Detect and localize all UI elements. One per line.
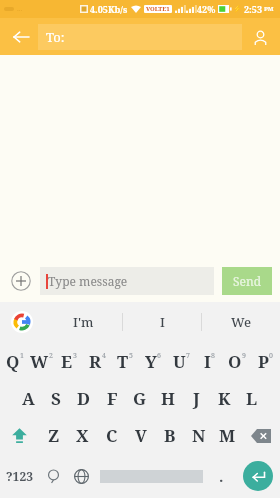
button[interactable]: E — [55, 342, 83, 380]
button[interactable]: W — [28, 342, 55, 380]
button[interactable]: Y — [139, 342, 167, 380]
staticText: P — [258, 350, 269, 373]
button[interactable]: L — [238, 380, 266, 417]
staticText: X — [76, 424, 89, 447]
staticText: V — [135, 424, 147, 447]
staticText: F — [107, 387, 118, 410]
button[interactable]: I — [123, 302, 201, 342]
staticText: 1 — [20, 351, 24, 361]
staticText: 5 — [129, 351, 133, 361]
staticText: W — [30, 350, 49, 373]
button[interactable]: X — [68, 417, 97, 454]
staticText: I — [160, 313, 165, 331]
staticText: M — [219, 424, 236, 447]
button[interactable]: B — [155, 417, 184, 454]
button[interactable]: C — [97, 417, 126, 454]
staticText: 2:53 — [244, 3, 262, 15]
button[interactable]: G — [126, 380, 154, 417]
staticText: 42% — [197, 3, 216, 15]
staticText: I — [204, 350, 211, 373]
button[interactable]: K — [210, 380, 238, 417]
button[interactable]: I'm — [44, 302, 122, 342]
button[interactable]: . — [207, 454, 235, 498]
button[interactable]: I — [195, 342, 223, 380]
button[interactable]: Shift — [0, 417, 39, 454]
staticText: ⚡ — [233, 5, 242, 13]
staticText: PM — [264, 5, 274, 13]
staticText: R — [89, 350, 102, 373]
staticText: U — [173, 350, 186, 373]
staticText: 4 — [102, 351, 106, 361]
staticText: To: — [46, 28, 65, 46]
staticText: O — [228, 350, 242, 373]
button[interactable]: ?123 — [0, 454, 39, 498]
button[interactable]: F — [98, 380, 126, 417]
staticText: L — [246, 387, 258, 410]
button[interactable]: M — [213, 417, 242, 454]
staticText: . — [219, 466, 224, 486]
staticText: C — [106, 424, 118, 447]
button[interactable]: Google — [0, 302, 44, 342]
button[interactable]: Space — [95, 454, 207, 498]
staticText: 8 — [211, 351, 215, 361]
button[interactable]: Emoji — [39, 454, 67, 498]
button[interactable]: R — [83, 342, 111, 380]
button[interactable]: J — [182, 380, 210, 417]
button[interactable]: O — [223, 342, 251, 380]
staticText: Q — [6, 350, 20, 373]
button[interactable]: We — [202, 302, 280, 342]
staticText: A — [22, 387, 35, 410]
button[interactable]: P — [251, 342, 279, 380]
staticText: I'm — [73, 313, 94, 331]
button[interactable]: T — [111, 342, 139, 380]
button[interactable]: N — [184, 417, 213, 454]
staticText: 7 — [186, 351, 190, 361]
staticText: 0 — [269, 351, 273, 361]
button[interactable]: A — [14, 380, 42, 417]
staticText: 2 — [49, 351, 53, 361]
staticText: J — [193, 387, 200, 410]
staticText: G — [133, 387, 147, 410]
button[interactable]: Add attachment — [8, 268, 34, 294]
staticText: Y — [145, 350, 157, 373]
button[interactable]: Contacts — [246, 23, 274, 51]
button[interactable]: Change language — [67, 454, 95, 498]
staticText: 6 — [157, 351, 161, 361]
staticText: 3 — [73, 351, 77, 361]
button[interactable]: S — [42, 380, 70, 417]
staticText: E — [61, 350, 73, 373]
button[interactable]: Send — [222, 267, 272, 295]
button[interactable]: To: — [38, 24, 242, 50]
button[interactable]: Back — [6, 22, 36, 52]
staticText: B — [164, 424, 176, 447]
staticText: ?123 — [6, 468, 33, 484]
staticText: 9 — [242, 351, 246, 361]
staticText: Send — [233, 273, 262, 289]
staticText: D — [77, 387, 91, 410]
button[interactable]: Type message — [40, 267, 214, 295]
button[interactable]: Backspace — [242, 417, 280, 454]
staticText: S — [51, 387, 61, 410]
button[interactable]: V — [126, 417, 155, 454]
staticText: Type message — [48, 273, 128, 289]
staticText: T — [117, 350, 129, 373]
button[interactable]: U — [167, 342, 195, 380]
staticText: VOLTE1 — [146, 5, 170, 13]
button[interactable]: D — [70, 380, 98, 417]
button[interactable]: Enter — [235, 454, 280, 498]
button[interactable]: Q — [1, 342, 28, 380]
staticText: We — [231, 313, 251, 331]
staticText: H — [161, 387, 175, 410]
staticText: K — [218, 387, 231, 410]
staticText: 4.05Kb/s — [90, 3, 128, 15]
staticText: Z — [48, 424, 60, 447]
button[interactable]: H — [154, 380, 182, 417]
button[interactable]: Z — [39, 417, 68, 454]
staticText: N — [192, 424, 206, 447]
